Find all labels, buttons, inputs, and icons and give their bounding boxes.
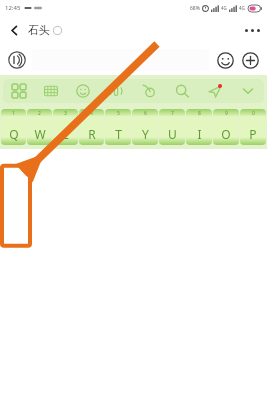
staticText: 3	[64, 110, 67, 117]
button[interactable]: 8	[186, 109, 212, 145]
staticText: Q	[9, 126, 19, 142]
button[interactable]: 6	[132, 109, 158, 145]
button[interactable]: More options	[237, 16, 267, 44]
button[interactable]	[32, 49, 209, 71]
staticText: 1	[12, 110, 15, 117]
button[interactable]: Send	[198, 79, 231, 103]
staticText: O	[221, 126, 231, 142]
button[interactable]: Sticker	[67, 79, 99, 103]
button[interactable]: Voice changer	[99, 79, 132, 103]
button[interactable]: More functions	[239, 49, 261, 71]
button[interactable]: Emoji	[214, 49, 236, 71]
button[interactable]: 9	[213, 109, 239, 145]
staticText: 2	[38, 110, 41, 117]
button[interactable]: Back	[0, 16, 28, 44]
staticText: 68%	[190, 5, 200, 12]
button[interactable]: 3	[53, 109, 78, 145]
button[interactable]: 0	[240, 109, 266, 145]
staticText: Y	[142, 126, 149, 142]
button[interactable]: 4	[79, 109, 104, 145]
staticText: R	[88, 126, 96, 142]
button[interactable]: Search	[165, 79, 198, 103]
button[interactable]: Voice input	[6, 49, 28, 71]
staticText: 7	[171, 110, 174, 117]
staticText: 8	[198, 110, 201, 117]
staticText: E	[62, 126, 69, 142]
button[interactable]: Collapse	[231, 79, 264, 103]
button[interactable]: 7	[159, 109, 185, 145]
button[interactable]: Call	[132, 79, 165, 103]
staticText: 4G	[239, 5, 245, 11]
staticText: 9	[225, 110, 228, 117]
staticText: P	[249, 126, 257, 142]
button[interactable]: Keyboard	[35, 79, 67, 103]
staticText: 石头	[28, 23, 50, 37]
staticText: W	[34, 126, 46, 142]
staticText: T	[115, 126, 122, 142]
button[interactable]: 1	[1, 109, 26, 145]
button[interactable]: 5	[105, 109, 131, 145]
staticText: 12:45	[5, 4, 21, 12]
button[interactable]: Apps	[3, 79, 35, 103]
staticText: 5	[117, 110, 120, 117]
staticText: U	[168, 126, 177, 142]
staticText: 4	[90, 110, 93, 117]
staticText: I	[197, 126, 202, 142]
staticText: 4G	[221, 5, 227, 11]
button[interactable]: 2	[27, 109, 52, 145]
staticText: 6	[144, 110, 147, 117]
staticText: 0	[252, 110, 255, 117]
